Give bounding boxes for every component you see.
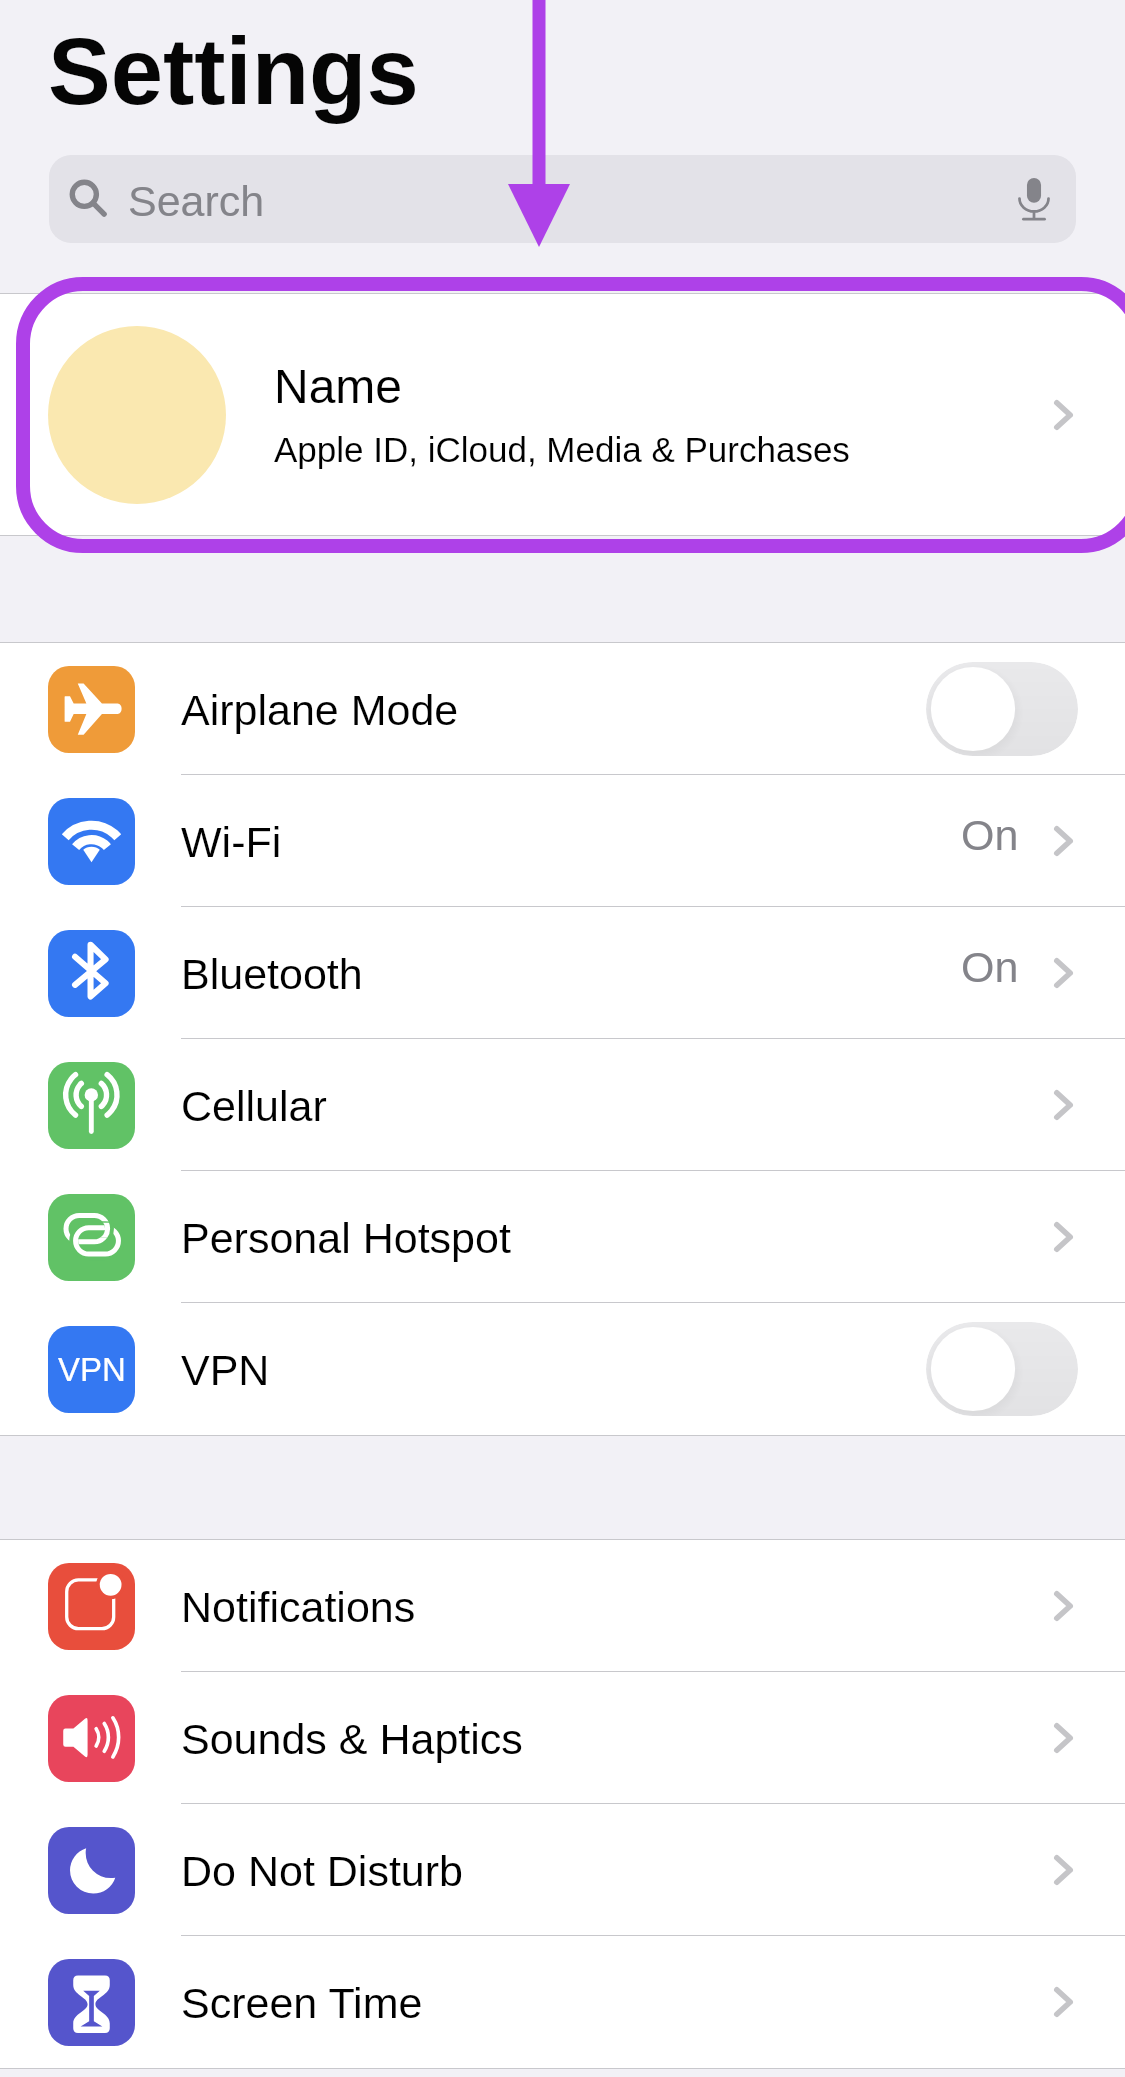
staticText: Sounds & Haptics <box>181 1715 523 1763</box>
staticText: Apple ID, iCloud, Media & Purchases <box>274 430 850 469</box>
staticText: Cellular <box>181 1082 327 1130</box>
staticText: Do Not Disturb <box>181 1847 463 1895</box>
button[interactable]: Do Not Disturb <box>0 1804 1125 1936</box>
button[interactable]: Personal Hotspot <box>0 1171 1125 1303</box>
staticText: Airplane Mode <box>181 686 459 734</box>
button[interactable]: Airplane Mode <box>0 643 1125 775</box>
staticText: Bluetooth <box>181 950 363 998</box>
staticText: On <box>961 943 1019 991</box>
button[interactable]: Bluetooth <box>0 907 1125 1039</box>
staticText: Settings <box>48 19 419 124</box>
button[interactable]: Sounds & Haptics <box>0 1672 1125 1804</box>
button[interactable]: Name <box>0 293 1125 536</box>
staticText: VPN <box>181 1346 270 1394</box>
staticText: Personal Hotspot <box>181 1214 511 1262</box>
button[interactable]: VPN toggle <box>926 1322 1078 1416</box>
staticText: VPN <box>58 1351 126 1388</box>
button[interactable]: Cellular <box>0 1039 1125 1171</box>
staticText: Wi-Fi <box>181 818 282 866</box>
staticText: Name <box>274 360 403 414</box>
button[interactable]: Wi-Fi <box>0 775 1125 907</box>
button[interactable]: Airplane Mode toggle <box>926 662 1078 756</box>
button[interactable]: Notifications <box>0 1540 1125 1672</box>
staticText: Search <box>128 177 265 225</box>
staticText: Screen Time <box>181 1979 423 2027</box>
staticText: On <box>961 811 1019 859</box>
staticText: Notifications <box>181 1583 416 1631</box>
button[interactable]: VPN <box>0 1303 1125 1435</box>
button[interactable]: Search <box>49 155 1076 243</box>
button[interactable]: Screen Time <box>0 1936 1125 2068</box>
